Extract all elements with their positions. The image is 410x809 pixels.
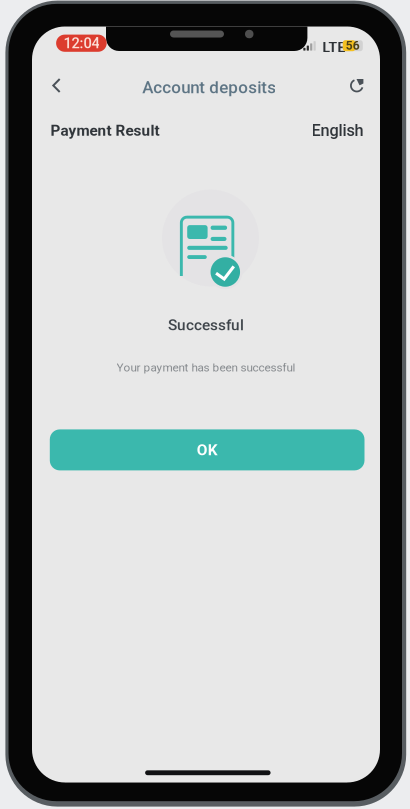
staticText: Account deposits	[142, 78, 276, 97]
staticText: 56	[346, 39, 360, 53]
staticText: Your payment has been successful	[116, 361, 295, 374]
staticText: OK	[197, 441, 218, 459]
button[interactable]: Back	[37, 66, 75, 104]
staticText: 12:04	[63, 35, 99, 52]
staticText: English	[312, 121, 364, 140]
staticText: Successful	[168, 316, 244, 334]
staticText: LTE	[322, 40, 345, 56]
staticText: Payment Result	[51, 122, 160, 139]
button[interactable]: Refresh	[338, 66, 376, 104]
button[interactable]: OK	[50, 429, 364, 470]
button[interactable]: English	[304, 118, 364, 142]
